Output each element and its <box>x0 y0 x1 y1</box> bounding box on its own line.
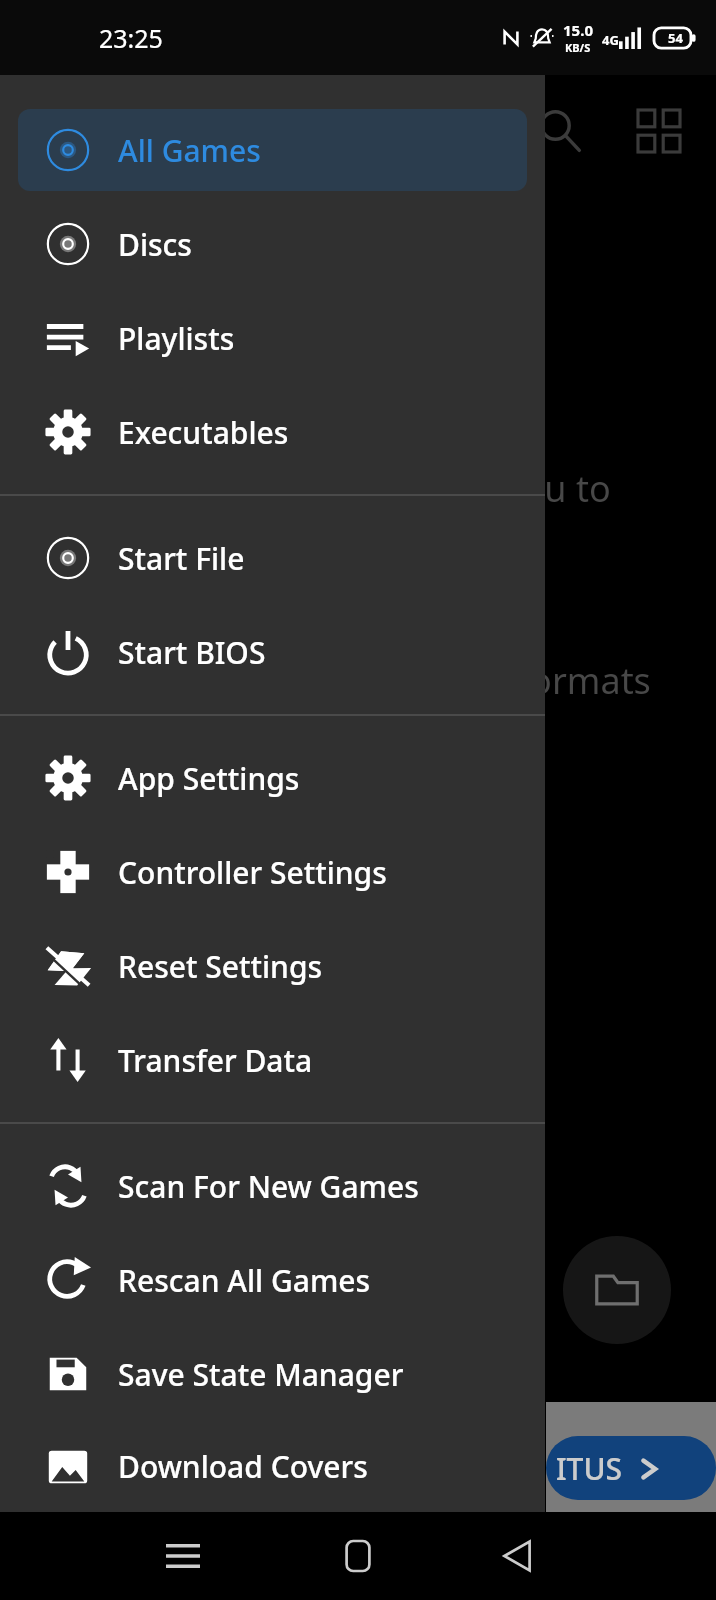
staticText: Discs <box>118 224 192 265</box>
staticText: KB/S <box>565 40 591 55</box>
staticText: Playlists <box>118 318 235 359</box>
button[interactable]: Save State Manager <box>18 1333 527 1415</box>
button[interactable]: Discs <box>18 203 527 285</box>
staticText: ITUS <box>556 1448 623 1489</box>
button[interactable]: All Games <box>18 109 527 191</box>
staticText: Save State Manager <box>118 1354 404 1395</box>
other: Search <box>537 108 583 154</box>
staticText: Executables <box>118 412 289 453</box>
button[interactable]: App Settings <box>18 737 527 819</box>
button[interactable]: Start BIOS <box>18 611 527 693</box>
button[interactable]: Scan For New Games <box>18 1145 527 1227</box>
staticText: Reset Settings <box>118 946 323 987</box>
other: Grid view <box>638 110 680 152</box>
staticText: Start File <box>118 538 245 579</box>
button[interactable]: Start File <box>18 517 527 599</box>
staticText: Start BIOS <box>118 632 266 673</box>
staticText: Scan For New Games <box>118 1166 419 1207</box>
button[interactable]: Transfer Data <box>18 1019 527 1101</box>
button[interactable]: Rescan All Games <box>18 1239 527 1321</box>
staticText: All Games <box>118 130 261 171</box>
button[interactable]: Menu <box>152 1525 214 1587</box>
staticText: 4G <box>602 31 619 49</box>
button[interactable]: Home <box>327 1525 389 1587</box>
staticText: 15.0 <box>563 20 593 40</box>
button[interactable]: Back <box>486 1525 548 1587</box>
button[interactable]: ITUS <box>546 1436 716 1500</box>
button[interactable]: Playlists <box>18 297 527 379</box>
button[interactable]: Reset Settings <box>18 925 527 1007</box>
staticText: Welcome Use the menu to add games Suppor… <box>330 400 651 705</box>
staticText: 23:25 <box>99 21 163 55</box>
staticText: Transfer Data <box>118 1040 313 1081</box>
staticText: Controller Settings <box>118 852 387 893</box>
staticText: App Settings <box>118 758 300 799</box>
staticText: Download Covers <box>118 1446 368 1487</box>
button[interactable]: Controller Settings <box>18 831 527 913</box>
button[interactable]: Download Covers <box>18 1427 527 1506</box>
staticText: Rescan All Games <box>118 1260 371 1301</box>
staticText: 54 <box>668 29 683 47</box>
button[interactable]: Executables <box>18 391 527 473</box>
button[interactable]: Open file <box>563 1236 671 1344</box>
